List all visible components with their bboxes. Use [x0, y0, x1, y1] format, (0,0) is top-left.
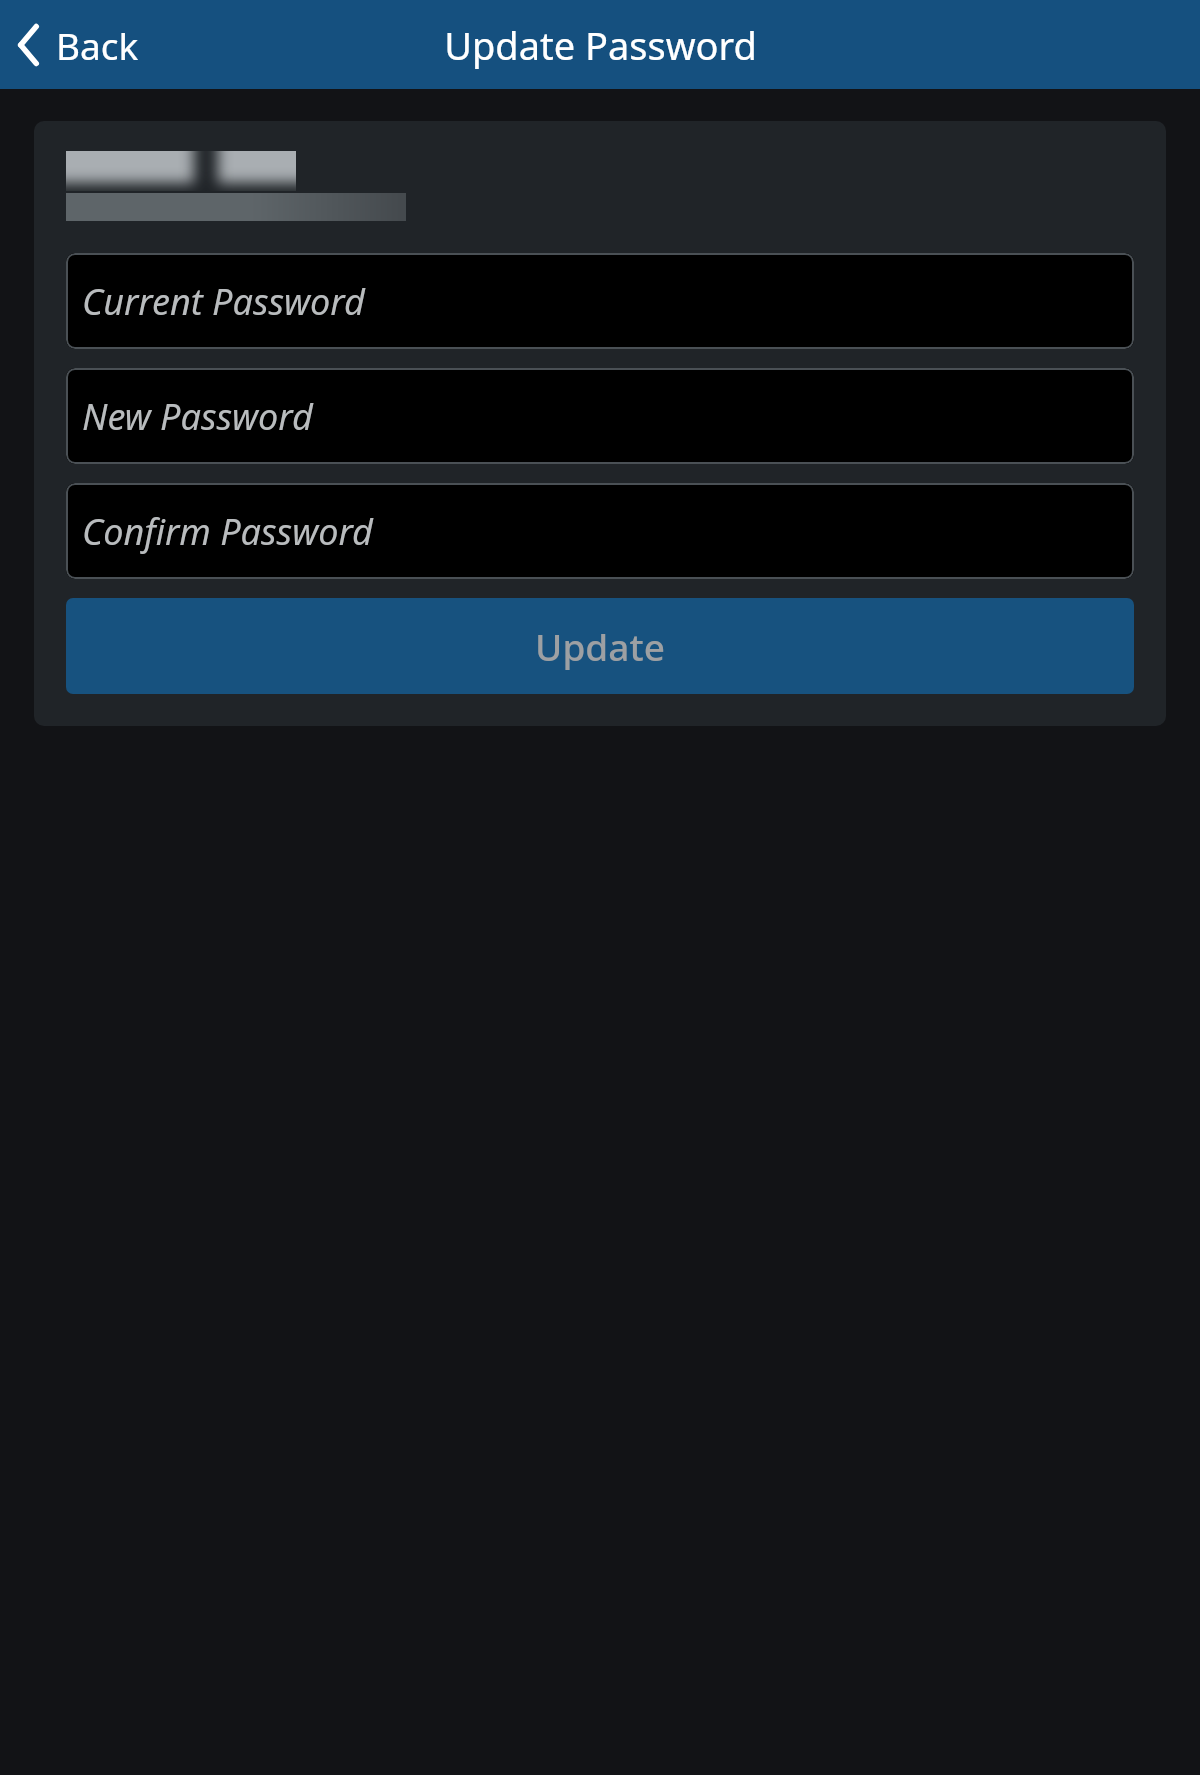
button[interactable]: Confirm Password — [66, 483, 1134, 579]
button[interactable]: Current Password — [66, 253, 1134, 349]
other: Back — [16, 24, 42, 66]
staticText: Update Password — [444, 19, 757, 71]
button[interactable]: Back — [0, 12, 157, 78]
staticText: Back — [56, 20, 139, 70]
button[interactable]: Update — [66, 598, 1134, 694]
staticText: Update — [535, 621, 665, 671]
staticText: New Password — [82, 392, 313, 441]
button[interactable]: New Password — [66, 368, 1134, 464]
staticText: Confirm Password — [82, 507, 373, 556]
staticText: Current Password — [82, 277, 365, 326]
